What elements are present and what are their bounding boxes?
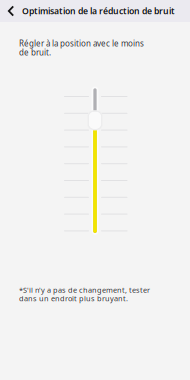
button[interactable]: Back <box>0 0 22 22</box>
staticText: Optimisation de la réduction de bruit <box>22 5 175 17</box>
staticText: *S'il n'y a pas de changement, tester da… <box>19 285 150 303</box>
staticText: Régler à la position avec le moins de br… <box>19 38 144 58</box>
